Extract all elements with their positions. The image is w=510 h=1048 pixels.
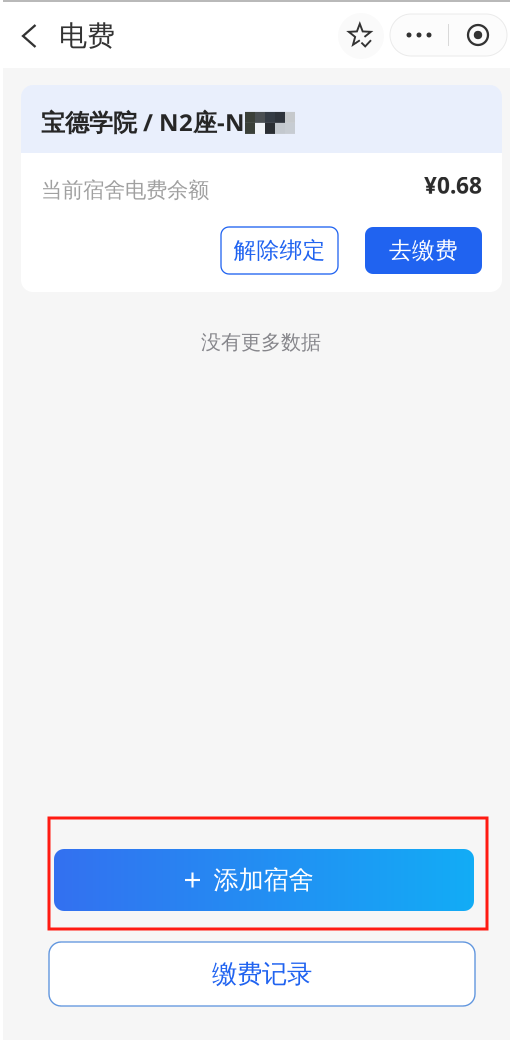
staticText: 缴费记录 [212,958,312,989]
staticText: 宝德学院 / N2座-N [41,106,245,138]
staticText: 添加宿舍 [213,864,313,895]
button[interactable]: 缴费记录 [49,942,475,1006]
staticText: 当前宿舍电费余额 [41,177,209,203]
staticText: 电费 [59,19,115,53]
button[interactable]: Add to favorites [338,13,384,59]
staticText: 去缴费 [389,237,458,264]
button[interactable]: 去缴费 [365,227,482,274]
staticText: ¥0.68 [424,170,482,200]
staticText: 没有更多数据 [201,330,321,355]
button[interactable]: 解除绑定 [221,227,338,274]
button[interactable]: 电费 [0,11,133,61]
button[interactable]: More options [390,14,448,56]
button[interactable]: Close mini program [449,14,507,56]
button[interactable]: 添加宿舍 [54,849,474,911]
staticText: 解除绑定 [233,237,325,264]
